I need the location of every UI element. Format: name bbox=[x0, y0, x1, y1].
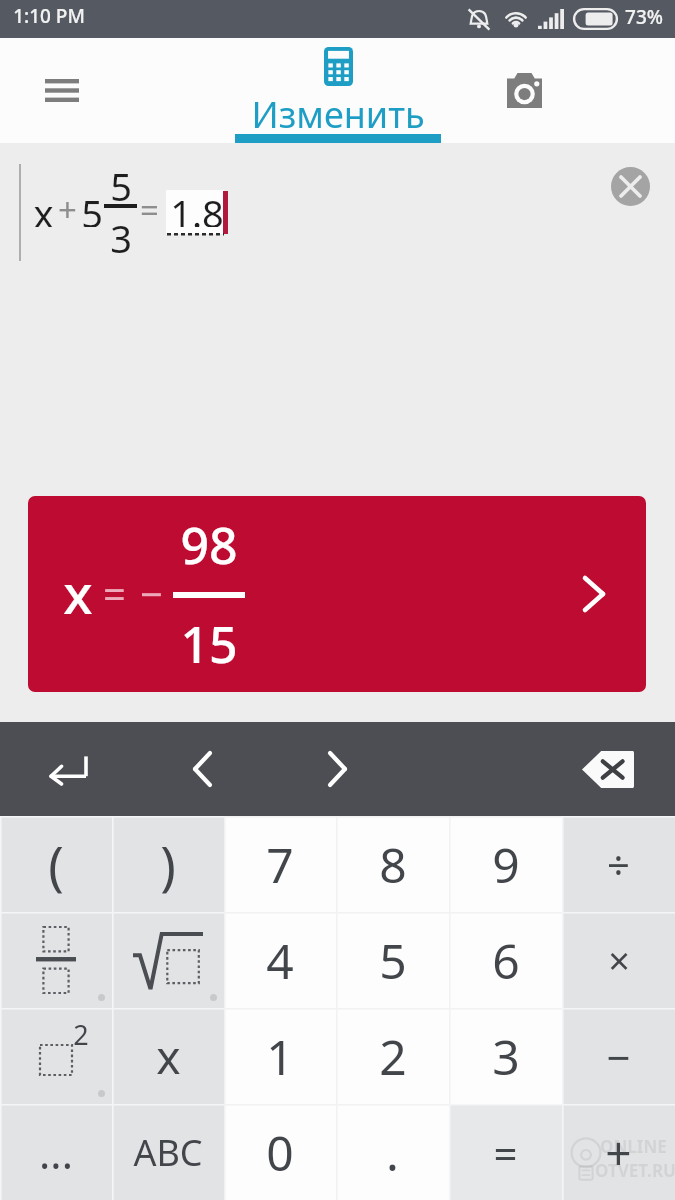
button[interactable]: 9 bbox=[449, 816, 562, 912]
button[interactable]: ÷ bbox=[562, 816, 675, 912]
staticText: x bbox=[63, 556, 93, 630]
staticText: ( bbox=[48, 829, 64, 900]
button[interactable] bbox=[0, 912, 112, 1008]
staticText: 5 bbox=[379, 928, 407, 993]
staticText: + bbox=[58, 187, 77, 227]
staticText: − bbox=[606, 1028, 631, 1085]
staticText: = bbox=[140, 187, 159, 227]
staticText: = bbox=[103, 566, 126, 620]
staticText: Изменить bbox=[251, 90, 425, 139]
button[interactable]: 0 bbox=[224, 1104, 336, 1200]
button[interactable]: 1 bbox=[224, 1008, 336, 1104]
button[interactable]: 4 bbox=[224, 912, 336, 1008]
staticText: ONLINE bbox=[600, 1135, 667, 1158]
staticText: × bbox=[608, 934, 630, 986]
button[interactable]: 5 bbox=[336, 912, 449, 1008]
staticText: 73% bbox=[625, 4, 663, 30]
staticText: − bbox=[140, 566, 163, 620]
staticText: 2 bbox=[379, 1024, 407, 1089]
staticText: 6 bbox=[492, 928, 520, 993]
button[interactable]: 3 bbox=[449, 1008, 562, 1104]
button[interactable]: − bbox=[562, 1008, 675, 1104]
staticText: ABC bbox=[133, 1128, 203, 1177]
button[interactable]: Enter bbox=[0, 722, 135, 816]
staticText: ... bbox=[39, 1124, 73, 1181]
button[interactable]: . bbox=[336, 1104, 449, 1200]
staticText: 9 bbox=[492, 832, 520, 897]
button[interactable]: 2 bbox=[0, 1008, 112, 1104]
button[interactable]: ... bbox=[0, 1104, 112, 1200]
staticText: = bbox=[493, 1124, 518, 1181]
button[interactable]: ) bbox=[112, 816, 224, 912]
staticText: ) bbox=[160, 829, 176, 900]
staticText: 15 bbox=[180, 610, 238, 678]
staticText: x bbox=[33, 187, 54, 227]
staticText: 3 bbox=[492, 1024, 520, 1089]
button[interactable]: × bbox=[562, 912, 675, 1008]
button[interactable]: Move left bbox=[135, 722, 270, 816]
button[interactable]: Изменить bbox=[235, 38, 441, 143]
staticText: 1.8 bbox=[170, 187, 224, 227]
button[interactable]: 6 bbox=[449, 912, 562, 1008]
button[interactable]: ( bbox=[0, 816, 112, 912]
staticText: 1:10 PM bbox=[13, 3, 85, 29]
staticText: 3 bbox=[110, 212, 132, 264]
staticText: 98 bbox=[180, 511, 238, 579]
staticText: x bbox=[156, 1025, 181, 1088]
button[interactable]: Backspace bbox=[540, 722, 675, 816]
button[interactable]: + bbox=[562, 1104, 675, 1200]
button[interactable]: 2 bbox=[336, 1008, 449, 1104]
staticText: . bbox=[386, 1120, 399, 1185]
staticText: 8 bbox=[379, 832, 407, 897]
staticText: 5 bbox=[110, 160, 132, 212]
staticText: 4 bbox=[266, 928, 294, 993]
button[interactable]: 7 bbox=[224, 816, 336, 912]
button[interactable]: Clear bbox=[611, 167, 650, 206]
button[interactable]: x bbox=[112, 1008, 224, 1104]
button[interactable]: 8 bbox=[336, 816, 449, 912]
button[interactable]: ABC bbox=[112, 1104, 224, 1200]
button[interactable]: = bbox=[449, 1104, 562, 1200]
button[interactable]: x bbox=[28, 496, 646, 692]
button[interactable]: Menu bbox=[0, 38, 124, 143]
staticText: ÷ bbox=[607, 837, 630, 891]
button[interactable]: Camera bbox=[462, 38, 586, 143]
staticText: 1 bbox=[266, 1024, 294, 1089]
button[interactable] bbox=[112, 912, 224, 1008]
staticText: 5 bbox=[81, 187, 103, 227]
staticText: 0 bbox=[266, 1120, 294, 1185]
staticText: 2 bbox=[73, 1016, 89, 1053]
staticText: OTVET.RU bbox=[595, 1159, 675, 1182]
staticText: 7 bbox=[266, 832, 294, 897]
staticText: + bbox=[605, 1121, 632, 1184]
button[interactable]: Move right bbox=[270, 722, 405, 816]
